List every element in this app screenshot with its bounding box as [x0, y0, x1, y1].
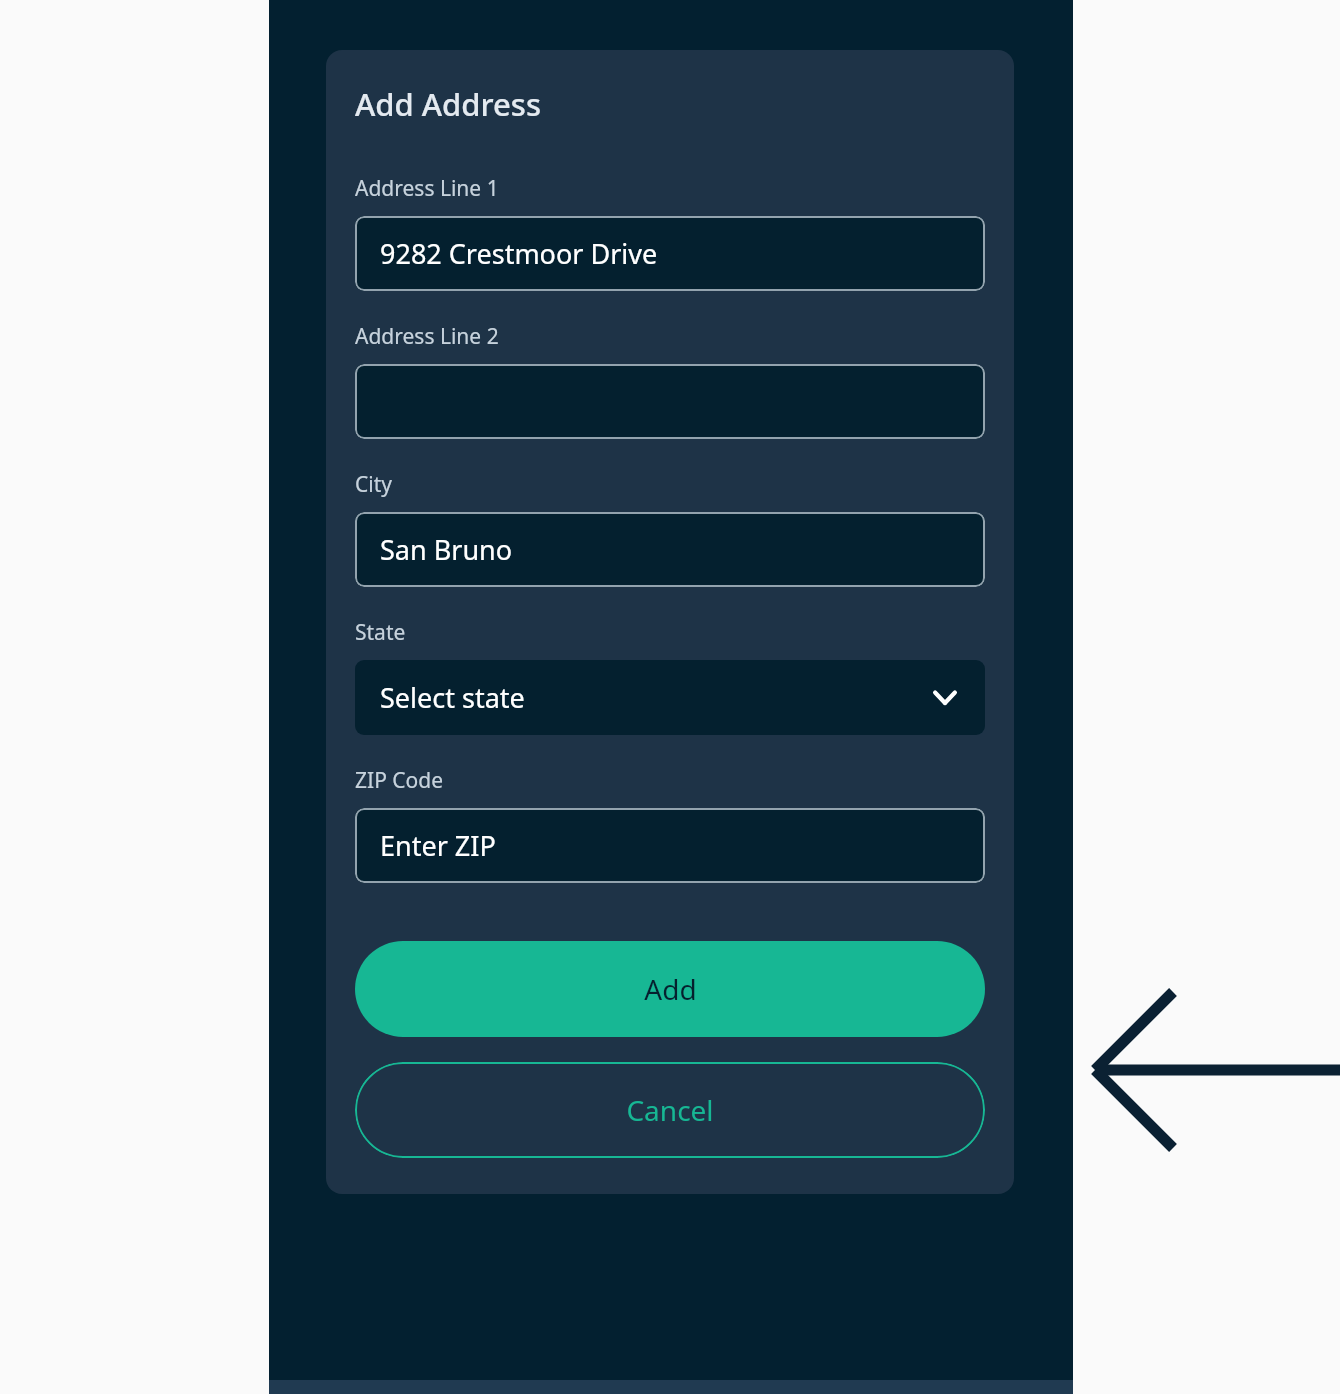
staticText: San Bruno [380, 531, 513, 568]
button[interactable]: Cancel [355, 1062, 985, 1158]
staticText: Cancel [626, 1091, 714, 1129]
button[interactable]: Add [355, 941, 985, 1037]
staticText: Enter ZIP [380, 827, 496, 864]
staticText: Address Line 1 [355, 174, 499, 203]
staticText: City [355, 470, 392, 499]
button[interactable] [355, 364, 985, 439]
button[interactable]: Enter ZIP [355, 808, 985, 883]
button[interactable]: San Bruno [355, 512, 985, 587]
staticText: Select state [380, 679, 525, 716]
staticText: 9282 Crestmoor Drive [380, 235, 658, 272]
staticText: State [355, 618, 406, 647]
staticText: Address Line 2 [355, 322, 499, 351]
staticText: Add [644, 970, 697, 1008]
button[interactable]: 9282 Crestmoor Drive [355, 216, 985, 291]
staticText: ZIP Code [355, 766, 444, 795]
button[interactable]: Select state [355, 660, 985, 735]
other: Back [1073, 960, 1340, 1180]
staticText: Add Address [355, 83, 541, 125]
